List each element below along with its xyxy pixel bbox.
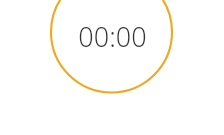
button[interactable]: Timer bbox=[0, 0, 224, 135]
staticText: 00:00 bbox=[78, 18, 147, 55]
